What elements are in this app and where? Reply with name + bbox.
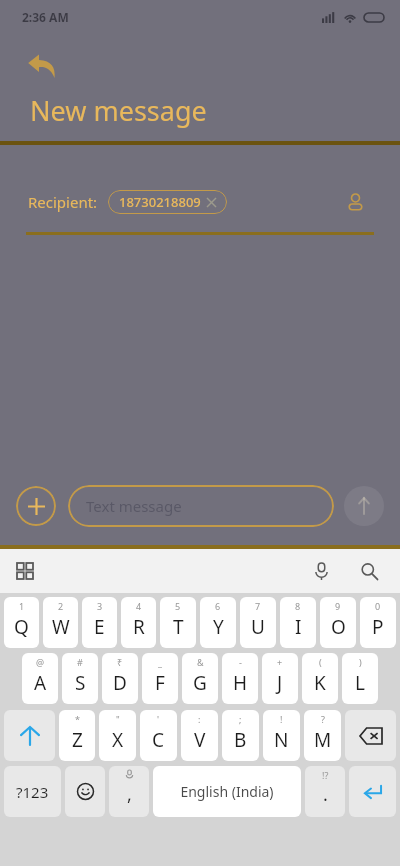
button[interactable]: 8 <box>280 597 316 648</box>
staticText: Recipient: <box>28 192 98 212</box>
button[interactable]: & <box>182 653 218 704</box>
staticText: T <box>173 614 184 640</box>
staticText: 3 <box>97 600 103 612</box>
staticText: Q <box>14 614 29 640</box>
staticText: V <box>194 727 206 753</box>
staticText: P <box>372 614 384 640</box>
staticText: @ <box>36 656 45 668</box>
button[interactable]: ' <box>140 710 177 761</box>
button[interactable]: - <box>222 653 258 704</box>
staticText: ?123 <box>16 782 49 802</box>
button[interactable]: 1 <box>4 597 39 648</box>
staticText: 0 <box>375 600 381 612</box>
staticText: 8 <box>295 600 301 612</box>
button[interactable]: 4 <box>121 597 156 648</box>
staticText: * <box>75 713 80 725</box>
staticText: M <box>314 727 332 753</box>
staticText: 4 <box>136 600 142 612</box>
staticText: C <box>152 727 165 753</box>
button[interactable]: , <box>109 766 149 817</box>
button[interactable]: ?123 <box>4 766 61 817</box>
button[interactable]: _ <box>142 653 178 704</box>
button[interactable]: Voice input <box>304 554 338 588</box>
button[interactable]: Back <box>16 40 68 92</box>
button[interactable]: ! <box>263 710 300 761</box>
staticText: 2 <box>58 600 64 612</box>
staticText: I <box>295 614 302 640</box>
staticText: F <box>155 670 165 696</box>
button[interactable]: * <box>59 710 95 761</box>
staticText: English (India) <box>180 782 274 801</box>
staticText: W <box>52 614 70 640</box>
staticText: New message <box>30 92 207 129</box>
button[interactable]: Text message <box>68 485 334 527</box>
button[interactable]: + <box>262 653 298 704</box>
staticText: Text message <box>86 496 182 516</box>
button[interactable]: ) <box>342 653 378 704</box>
staticText: 7 <box>255 600 261 612</box>
staticText: S <box>75 670 86 696</box>
button[interactable]: 0 <box>360 597 396 648</box>
staticText: 2:36 AM <box>22 9 69 25</box>
button[interactable]: !? <box>305 766 345 817</box>
staticText: 5 <box>175 600 181 612</box>
button[interactable]: 6 <box>200 597 236 648</box>
button[interactable]: Emoji <box>65 766 105 817</box>
staticText: L <box>355 670 365 696</box>
staticText: " <box>116 713 120 725</box>
button[interactable]: Keyboard layouts <box>8 554 42 588</box>
button[interactable]: Search <box>352 554 386 588</box>
staticText: 6 <box>215 600 221 612</box>
button[interactable]: ₹ <box>102 653 138 704</box>
button[interactable]: ( <box>302 653 338 704</box>
staticText: X <box>112 727 124 753</box>
button[interactable]: 18730218809 <box>108 190 227 214</box>
staticText: & <box>197 656 204 668</box>
button[interactable]: 2 <box>43 597 78 648</box>
staticText: D <box>113 670 127 696</box>
staticText: _ <box>158 656 162 668</box>
button[interactable]: ? <box>304 710 341 761</box>
button[interactable]: Add attachment <box>16 486 56 526</box>
staticText: H <box>233 670 248 696</box>
button[interactable]: # <box>62 653 98 704</box>
button[interactable]: Shift <box>4 710 55 761</box>
staticText: ' <box>157 713 160 725</box>
staticText: ! <box>280 713 283 725</box>
staticText: J <box>277 670 283 696</box>
button[interactable]: 7 <box>240 597 276 648</box>
staticText: !? <box>322 769 329 781</box>
staticText: N <box>274 727 289 753</box>
staticText: E <box>94 614 105 640</box>
button[interactable]: Backspace <box>345 710 396 761</box>
staticText: 9 <box>335 600 341 612</box>
staticText: G <box>193 670 207 696</box>
button[interactable]: 3 <box>82 597 117 648</box>
button[interactable]: " <box>99 710 136 761</box>
staticText: Z <box>72 727 83 753</box>
staticText: A <box>34 670 47 696</box>
button[interactable]: Contacts <box>338 185 372 219</box>
staticText: R <box>133 614 145 640</box>
staticText: 1 <box>19 600 25 612</box>
staticText: # <box>77 656 83 668</box>
button[interactable]: English (India) <box>153 766 301 817</box>
staticText: , <box>127 782 132 807</box>
staticText: Y <box>213 614 224 640</box>
staticText: K <box>314 670 326 696</box>
button[interactable]: @ <box>22 653 58 704</box>
button[interactable]: Enter <box>349 766 396 817</box>
button[interactable]: : <box>181 710 218 761</box>
button[interactable]: Send <box>344 486 384 526</box>
staticText: : <box>198 713 201 725</box>
staticText: B <box>234 727 247 753</box>
button[interactable]: 9 <box>320 597 356 648</box>
staticText: - <box>239 656 242 668</box>
button[interactable]: ; <box>222 710 259 761</box>
staticText: ? <box>321 713 325 725</box>
staticText: ; <box>239 713 242 725</box>
staticText: + <box>277 656 283 668</box>
button[interactable]: 5 <box>160 597 196 648</box>
staticText: ( <box>319 656 322 668</box>
staticText: U <box>251 614 265 640</box>
